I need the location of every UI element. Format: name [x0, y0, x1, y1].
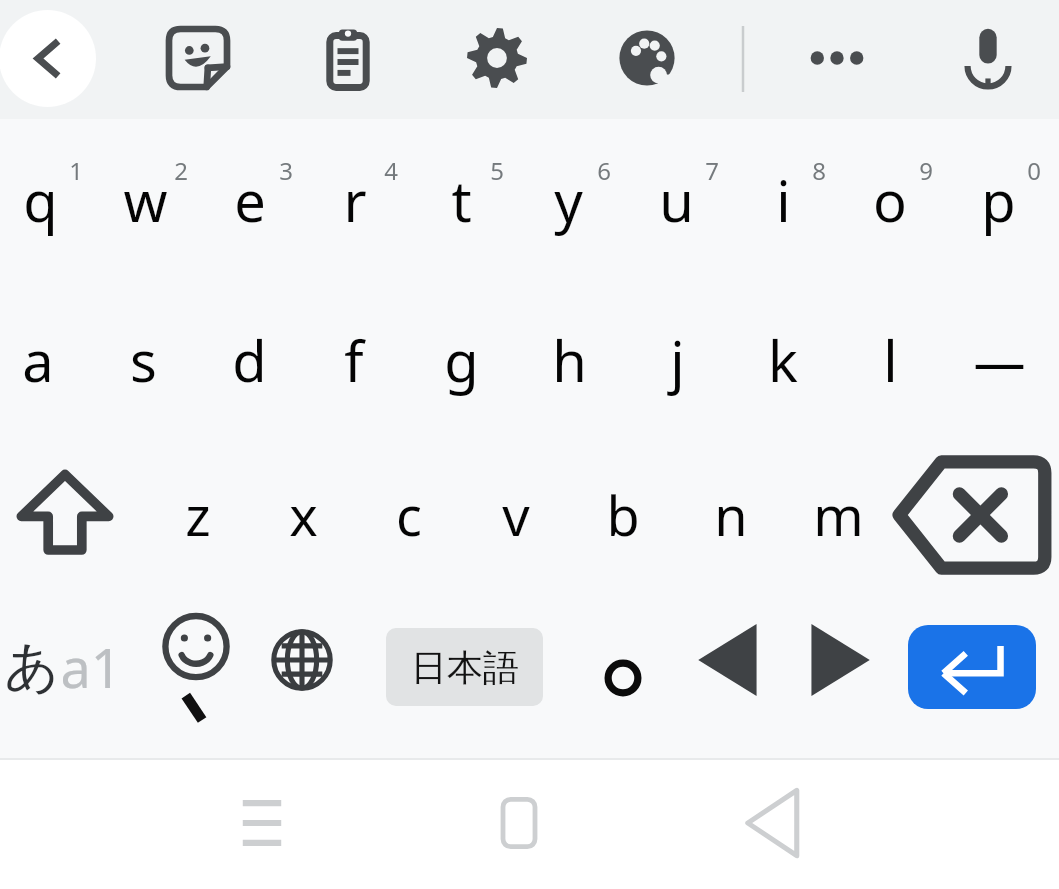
staticText: — — [973, 325, 1026, 396]
staticText: 9 — [919, 154, 933, 187]
button[interactable]: Move cursor left — [681, 612, 781, 722]
staticText: m — [813, 478, 864, 552]
staticText: 0 — [1027, 154, 1041, 187]
button[interactable]: j — [624, 300, 730, 420]
button[interactable]: e — [197, 126, 303, 246]
staticText: f — [344, 322, 364, 398]
button[interactable]: — — [946, 300, 1052, 420]
button[interactable]: Themes — [598, 0, 698, 119]
button[interactable]: Back — [0, 10, 96, 107]
button[interactable]: n — [678, 455, 784, 575]
button[interactable]: h — [516, 300, 622, 420]
button[interactable]: m — [785, 455, 891, 575]
button[interactable]: b — [570, 455, 676, 575]
button[interactable]: l — [837, 300, 943, 420]
button[interactable]: Settings — [448, 0, 548, 119]
button[interactable]: Shift — [8, 455, 128, 575]
staticText: 日本語 — [411, 645, 519, 690]
button[interactable]: あ — [0, 612, 150, 722]
button[interactable]: Home — [459, 773, 579, 873]
button[interactable]: Japanese period — [573, 612, 673, 722]
button[interactable]: k — [730, 300, 836, 420]
button[interactable]: c — [356, 455, 462, 575]
staticText: 8 — [812, 154, 826, 187]
staticText: h — [552, 322, 587, 398]
staticText: 4 — [384, 154, 398, 187]
staticText: k — [768, 322, 798, 398]
staticText: a1 — [60, 630, 122, 704]
button[interactable]: r — [302, 126, 408, 246]
button[interactable]: Backspace — [912, 455, 1032, 575]
button[interactable]: 日本語 — [386, 628, 543, 706]
button[interactable]: Switch language — [250, 612, 354, 722]
staticText: q — [23, 162, 58, 238]
button[interactable]: a — [0, 300, 91, 420]
button[interactable]: Enter — [908, 625, 1036, 709]
button[interactable]: Move cursor right — [787, 612, 887, 722]
button[interactable]: z — [145, 455, 251, 575]
staticText: y — [554, 162, 583, 238]
staticText: b — [606, 478, 640, 552]
staticText: 3 — [279, 154, 293, 187]
staticText: i — [776, 162, 791, 238]
button[interactable]: o — [837, 126, 943, 246]
staticText: 1 — [69, 154, 83, 187]
staticText: l — [883, 322, 898, 398]
button[interactable]: More options — [788, 0, 888, 119]
button[interactable]: d — [196, 300, 302, 420]
staticText: d — [232, 322, 267, 398]
staticText: w — [123, 162, 168, 238]
staticText: e — [234, 162, 266, 238]
staticText: s — [130, 322, 157, 398]
staticText: c — [396, 478, 422, 552]
button[interactable]: Stickers — [148, 0, 248, 119]
button[interactable]: w — [92, 126, 198, 246]
button[interactable]: Voice input — [939, 0, 1039, 119]
staticText: j — [670, 322, 685, 398]
button[interactable]: p — [945, 126, 1051, 246]
button[interactable]: s — [90, 300, 196, 420]
staticText: u — [659, 162, 694, 238]
button[interactable]: Emoji and comma — [148, 612, 248, 722]
button[interactable]: t — [408, 126, 514, 246]
staticText: g — [444, 322, 479, 398]
staticText: あ — [4, 633, 60, 701]
button[interactable]: u — [623, 126, 729, 246]
staticText: p — [981, 162, 1016, 238]
staticText: 5 — [490, 154, 504, 187]
button[interactable]: x — [250, 455, 356, 575]
staticText: t — [451, 162, 472, 238]
staticText: 6 — [597, 154, 611, 187]
button[interactable]: y — [515, 126, 621, 246]
button[interactable]: f — [301, 300, 407, 420]
staticText: a — [22, 322, 54, 398]
button[interactable]: Recent apps — [202, 773, 322, 873]
staticText: z — [185, 478, 211, 552]
button[interactable]: i — [730, 126, 836, 246]
staticText: r — [343, 162, 367, 238]
staticText: 7 — [705, 154, 719, 187]
button[interactable]: Back — [715, 773, 835, 873]
staticText: n — [714, 478, 748, 552]
staticText: 2 — [174, 154, 188, 187]
staticText: x — [289, 478, 318, 552]
button[interactable]: q — [0, 126, 93, 246]
button[interactable]: g — [408, 300, 514, 420]
staticText: o — [873, 162, 907, 238]
button[interactable]: Clipboard — [298, 0, 398, 119]
staticText: v — [502, 478, 530, 552]
button[interactable]: v — [463, 455, 569, 575]
